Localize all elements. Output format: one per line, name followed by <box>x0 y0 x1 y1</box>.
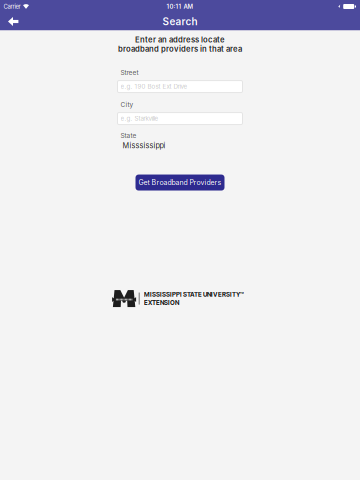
staticText: EXTENSION <box>144 299 179 307</box>
staticText: City <box>120 101 133 108</box>
staticText: MISSISSIPPI STATE UNIVERSITY™ <box>144 291 244 298</box>
staticText: Search <box>162 15 197 28</box>
button[interactable]: Back <box>0 13 26 30</box>
button[interactable]: e.g. Starkville <box>117 113 242 125</box>
staticText: Get Broadband Providers <box>138 178 221 187</box>
staticText: 10:11 AM <box>166 3 193 10</box>
staticText: Misssissippi <box>122 141 165 150</box>
staticText: Carrier <box>3 3 20 10</box>
staticText: broadband providers in that area <box>118 44 242 54</box>
button[interactable]: Get Broadband Providers <box>135 175 224 191</box>
staticText: e.g. Starkville <box>120 115 158 122</box>
staticText: State <box>120 132 136 139</box>
button[interactable]: e.g. 190 Bost Ext Drive <box>117 81 242 93</box>
staticText: e.g. 190 Bost Ext Drive <box>120 83 187 90</box>
staticText: Enter an address locate <box>135 35 225 44</box>
staticText: Street <box>120 69 138 76</box>
